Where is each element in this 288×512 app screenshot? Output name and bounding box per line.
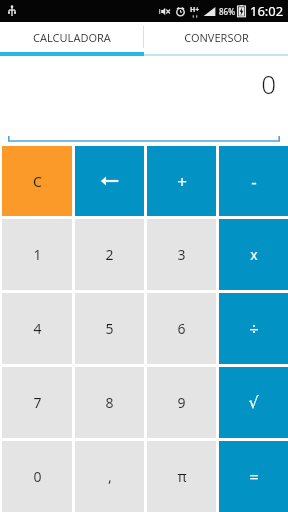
staticText: 8: [105, 393, 114, 412]
staticText: +: [177, 170, 187, 193]
staticText: -: [251, 170, 257, 193]
staticText: =: [249, 466, 259, 488]
button[interactable]: 2: [75, 219, 144, 290]
staticText: 1: [33, 245, 42, 264]
staticText: H+: [190, 5, 200, 15]
button[interactable]: Backspace: [75, 146, 144, 216]
staticText: √: [248, 393, 259, 412]
button[interactable]: 5: [75, 293, 144, 364]
button[interactable]: -: [219, 146, 288, 216]
button[interactable]: x: [219, 219, 288, 290]
staticText: 0: [261, 66, 276, 101]
button[interactable]: ,: [75, 441, 144, 512]
button[interactable]: 7: [2, 367, 72, 438]
button[interactable]: =: [219, 441, 288, 512]
staticText: ,: [108, 467, 112, 486]
button[interactable]: π: [147, 441, 216, 512]
button[interactable]: 4: [2, 293, 72, 364]
button[interactable]: 0: [2, 441, 72, 512]
staticText: 4: [33, 319, 42, 338]
staticText: 3: [177, 245, 186, 264]
staticText: C: [33, 172, 42, 191]
button[interactable]: 6: [147, 293, 216, 364]
button[interactable]: ÷: [219, 293, 288, 364]
button[interactable]: 9: [147, 367, 216, 438]
button[interactable]: 8: [75, 367, 144, 438]
staticText: 86%: [219, 6, 235, 17]
button[interactable]: +: [147, 146, 216, 216]
staticText: x: [250, 245, 258, 264]
staticText: ÷: [249, 318, 259, 340]
staticText: π: [177, 467, 187, 486]
staticText: 0: [33, 467, 42, 486]
staticText: CALCULADORA: [33, 30, 111, 45]
button[interactable]: √: [219, 367, 288, 438]
button[interactable]: CALCULADORA: [0, 22, 143, 52]
staticText: 5: [105, 319, 114, 338]
button[interactable]: C: [2, 146, 72, 216]
staticText: 9: [177, 393, 186, 412]
button[interactable]: CONVERSOR: [144, 22, 288, 52]
staticText: 6: [177, 319, 186, 338]
button[interactable]: 3: [147, 219, 216, 290]
staticText: 2: [105, 245, 114, 264]
button[interactable]: 1: [2, 219, 72, 290]
staticText: 7: [33, 393, 42, 412]
staticText: CONVERSOR: [184, 30, 249, 45]
staticText: 16:02: [250, 2, 284, 20]
